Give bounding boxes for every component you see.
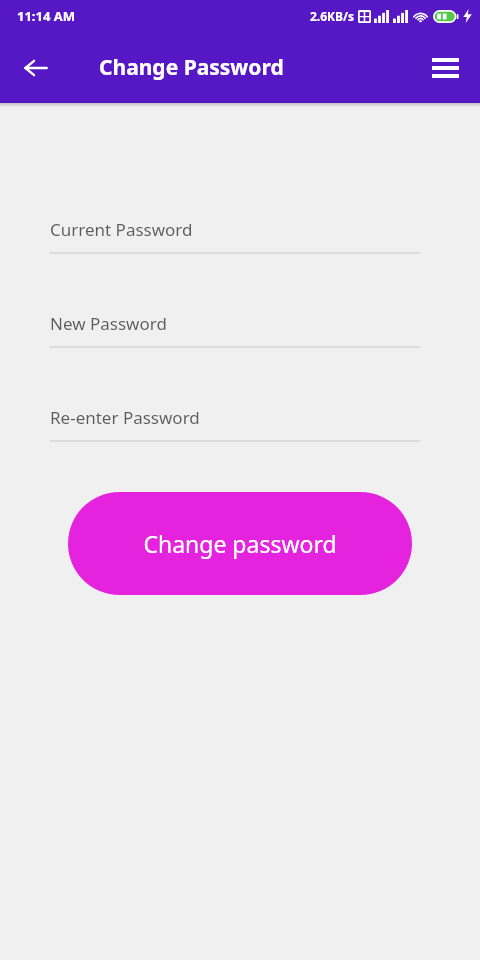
- button[interactable]: Current Password: [50, 218, 420, 254]
- button[interactable]: New Password: [50, 312, 420, 348]
- staticText: Current Password: [50, 218, 193, 241]
- staticText: Change Password: [99, 53, 284, 82]
- staticText: Change password: [143, 528, 337, 559]
- button[interactable]: Menu: [422, 45, 468, 91]
- button[interactable]: Re-enter Password: [50, 406, 420, 442]
- staticText: 11:14 AM: [17, 7, 76, 25]
- staticText: New Password: [50, 312, 167, 335]
- staticText: 2.6KB/s: [310, 8, 355, 24]
- button[interactable]: Back: [14, 46, 58, 90]
- button[interactable]: Change password: [68, 492, 412, 595]
- staticText: Re-enter Password: [50, 406, 200, 429]
